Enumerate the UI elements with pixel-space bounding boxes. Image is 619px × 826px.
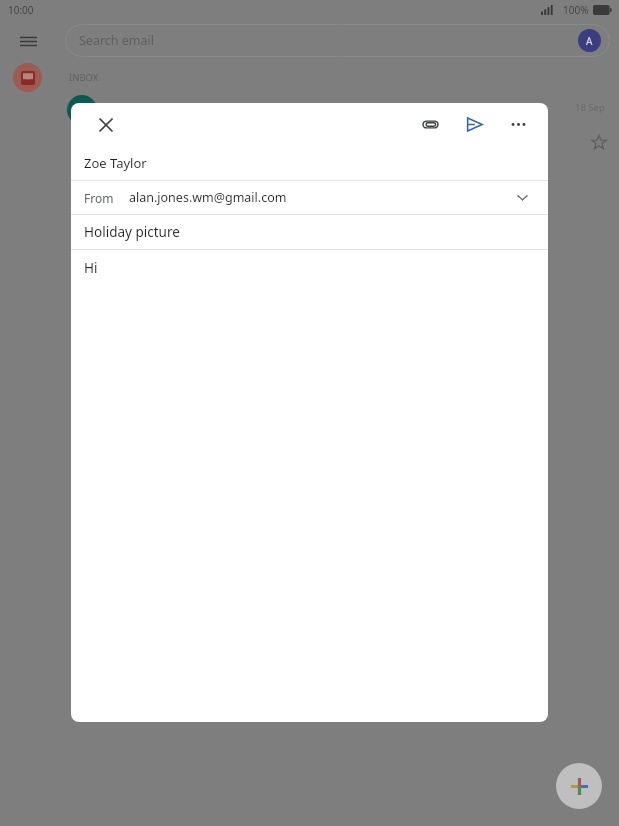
button[interactable]: Inbox [13, 63, 42, 92]
staticText: 100% [563, 3, 589, 17]
staticText: Zoe Taylor [84, 154, 147, 172]
button[interactable]: Close [84, 103, 128, 146]
button[interactable]: Send [452, 103, 496, 146]
button[interactable]: Star [586, 129, 611, 154]
button[interactable]: Navigation menu [10, 23, 46, 59]
staticText: 10:00 [8, 3, 34, 17]
staticText: INBOX [69, 71, 99, 84]
staticText: A [586, 34, 593, 48]
staticText: Hi [84, 259, 98, 277]
button[interactable]: Search email [65, 24, 610, 57]
staticText: alan.jones.wm@gmail.com [129, 189, 287, 206]
staticText: Search email [79, 32, 155, 49]
button[interactable]: Attach file [408, 103, 452, 146]
button[interactable]: Expand recipients [504, 181, 540, 214]
button[interactable]: Zoe Taylor [71, 146, 548, 180]
staticText: Holiday picture [84, 223, 180, 241]
button[interactable]: From [71, 181, 548, 214]
button[interactable]: Compose [556, 763, 602, 809]
button[interactable]: Holiday picture [71, 215, 548, 249]
staticText: 18 Sep [575, 101, 605, 114]
button[interactable]: More options [496, 103, 540, 146]
staticText: From [84, 190, 114, 206]
